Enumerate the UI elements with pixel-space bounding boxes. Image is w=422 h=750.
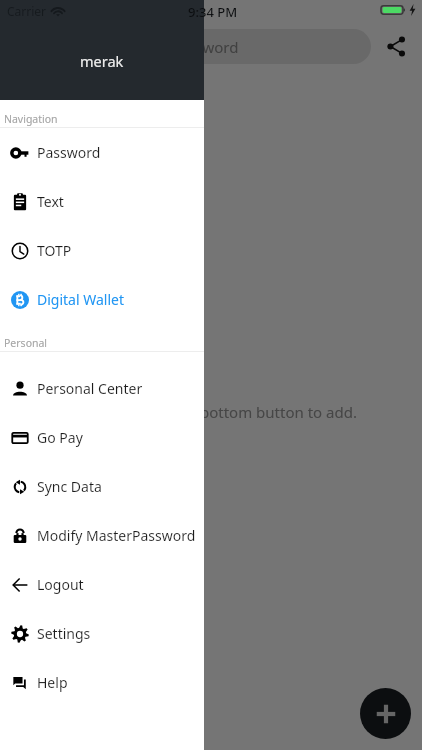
staticText: Personal Center <box>37 379 143 398</box>
staticText: Text <box>37 192 64 211</box>
button[interactable]: Password <box>0 128 204 177</box>
staticText: TOTP <box>37 241 72 260</box>
button[interactable]: Modify MasterPassword <box>0 511 204 560</box>
staticText: Go Pay <box>37 428 83 447</box>
button[interactable]: Text <box>0 177 204 226</box>
staticText: Digital Wallet <box>37 290 124 309</box>
staticText: merak <box>80 51 124 71</box>
button[interactable]: Settings <box>0 609 204 658</box>
staticText: 9:34 PM <box>188 3 238 21</box>
button[interactable]: TOTP <box>0 226 204 275</box>
staticText: Search password <box>119 37 239 57</box>
button[interactable]: Sync Data <box>0 462 204 511</box>
staticText: Carrier <box>7 3 47 19</box>
staticText: Help <box>37 673 68 692</box>
button[interactable]: Add <box>360 688 411 739</box>
button[interactable]: Help <box>0 658 204 707</box>
staticText: Password <box>37 143 101 162</box>
staticText: Settings <box>37 624 91 643</box>
button[interactable]: Share <box>378 28 414 64</box>
staticText: Logout <box>37 575 84 594</box>
staticText: No data, click the bottom button to add. <box>75 402 357 422</box>
staticText: Navigation <box>4 112 58 126</box>
button[interactable]: Digital Wallet <box>0 275 204 324</box>
button[interactable]: Go Pay <box>0 413 204 462</box>
staticText: Personal <box>4 336 48 350</box>
button[interactable]: Personal Center <box>0 364 204 413</box>
staticText: Modify MasterPassword <box>37 526 196 545</box>
staticText: Sync Data <box>37 477 102 496</box>
button[interactable]: Search password <box>12 29 371 64</box>
button[interactable]: Logout <box>0 560 204 609</box>
